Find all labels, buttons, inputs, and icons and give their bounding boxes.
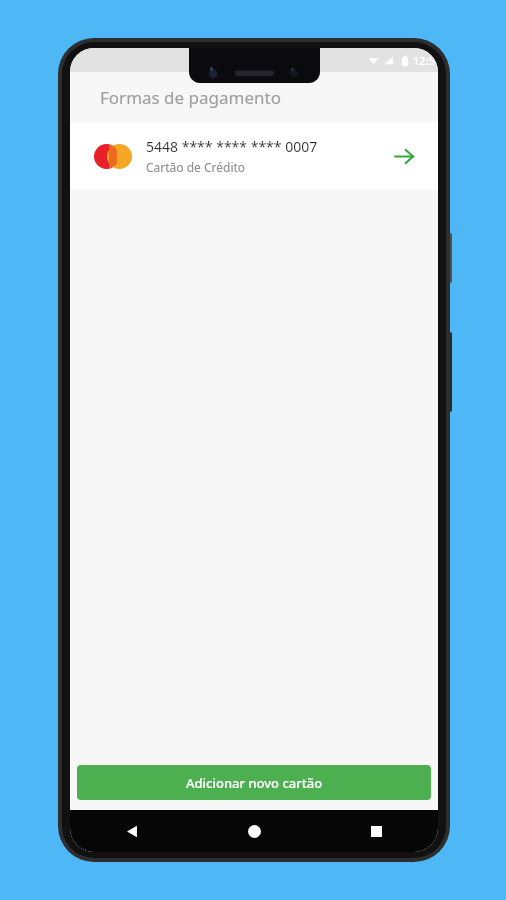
staticText: Adicionar novo cartão (186, 774, 323, 792)
staticText: Cartão de Crédito (146, 159, 246, 175)
staticText: Formas de pagamento (100, 86, 281, 109)
staticText: 12:5 (413, 53, 435, 68)
button[interactable]: Recentes (358, 813, 394, 849)
staticText: 5448 **** **** **** 0007 (146, 137, 318, 156)
button[interactable]: Voltar (114, 813, 150, 849)
button[interactable]: Adicionar novo cartão (77, 765, 431, 800)
button[interactable]: Ver cartão (390, 142, 418, 170)
button[interactable]: Início (236, 813, 272, 849)
button[interactable]: 5448 **** **** **** 0007 (70, 122, 438, 190)
